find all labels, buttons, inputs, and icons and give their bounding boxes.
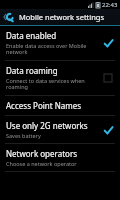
button[interactable]: Network operators	[0, 144, 120, 171]
button[interactable]: Data roaming	[0, 61, 120, 95]
staticText: Choose a network operator	[6, 160, 77, 167]
button[interactable]: Access Point Names	[0, 96, 120, 115]
button[interactable]: Data enabled	[100, 35, 116, 51]
staticText: Enable data access over Mobile network	[6, 42, 87, 56]
staticText: Use only 2G networks	[6, 120, 88, 131]
staticText: Mobile network settings	[19, 12, 105, 22]
staticText: Network operators	[6, 148, 78, 159]
staticText: Data roaming	[6, 65, 58, 76]
button[interactable]: Use only 2G networks	[0, 116, 120, 143]
button[interactable]: Data enabled	[0, 26, 120, 60]
staticText: Data enabled	[6, 30, 57, 41]
staticText: Access Point Names	[6, 100, 82, 111]
button[interactable]: Data roaming	[100, 70, 116, 86]
button[interactable]: Use only 2G networks	[100, 122, 116, 138]
button[interactable]: Navigate up	[1, 9, 17, 25]
staticText: Saves battery	[6, 132, 41, 139]
staticText: 22:43	[102, 1, 118, 9]
staticText: Connect to data services when roaming	[6, 77, 85, 91]
